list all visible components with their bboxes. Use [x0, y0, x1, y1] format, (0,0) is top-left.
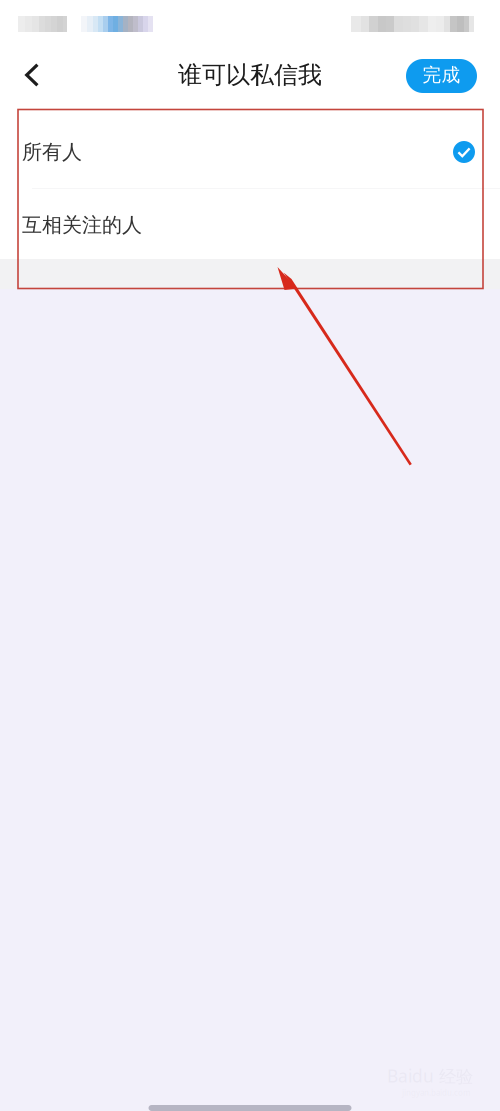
button[interactable]: 所有人 — [0, 110, 500, 188]
staticText: 所有人 — [22, 140, 82, 164]
button[interactable]: 互相关注的人 — [0, 189, 500, 259]
button[interactable]: 完成 — [406, 59, 477, 93]
button[interactable]: Back — [0, 47, 57, 103]
staticText: 互相关注的人 — [22, 213, 142, 237]
staticText: 谁可以私信我 — [178, 60, 322, 90]
staticText: 完成 — [422, 63, 460, 86]
